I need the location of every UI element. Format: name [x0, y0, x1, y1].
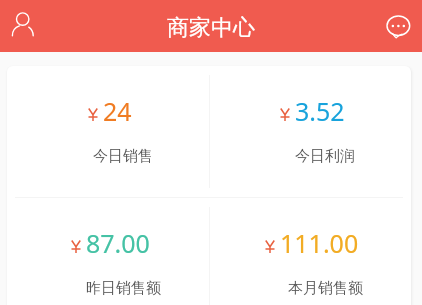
- button[interactable]: 111.00: [209, 198, 411, 305]
- staticText: 今日销售: [93, 147, 153, 166]
- staticText: 24: [103, 94, 132, 128]
- staticText: 87.00: [86, 226, 150, 260]
- button[interactable]: 3.52: [209, 66, 411, 197]
- staticText: 111.00: [280, 226, 359, 260]
- button[interactable]: 24: [7, 66, 209, 197]
- button[interactable]: 87.00: [7, 198, 209, 305]
- staticText: 昨日销售额: [86, 279, 161, 298]
- staticText: 本月销售额: [288, 279, 363, 298]
- button[interactable]: Messages: [378, 3, 422, 48]
- staticText: 3.52: [295, 94, 345, 128]
- button[interactable]: Profile: [0, 3, 44, 48]
- staticText: 商家中心: [167, 14, 255, 42]
- staticText: 今日利润: [295, 147, 355, 166]
